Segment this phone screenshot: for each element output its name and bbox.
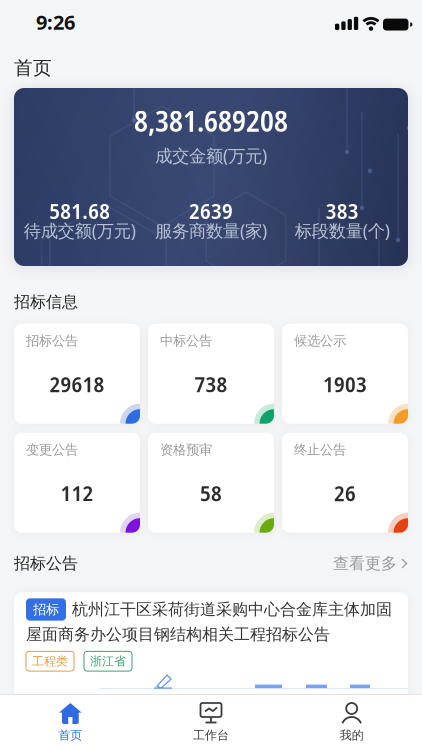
staticText: 标段数量(个) — [295, 219, 390, 242]
staticText: 杭州江干区采荷街道采购中心合金库主体加固 — [72, 600, 392, 619]
button[interactable]: 招标公告 — [14, 324, 140, 424]
staticText: 9:26 — [36, 9, 75, 35]
staticText: 查看更多 — [333, 554, 397, 573]
button[interactable]: 首页 — [0, 702, 141, 743]
staticText: 变更公告 — [26, 442, 78, 458]
button[interactable]: 变更公告 — [14, 433, 140, 533]
staticText: 首页 — [58, 728, 82, 743]
staticText: 服务商数量(家) — [155, 219, 267, 242]
staticText: 我的 — [340, 728, 364, 743]
staticText: 2639 — [189, 195, 233, 225]
button[interactable]: 工作台 — [141, 702, 281, 743]
staticText: 招标公告 — [26, 333, 78, 349]
staticText: 资格预审 — [160, 442, 212, 458]
staticText: 738 — [194, 369, 227, 399]
staticText: 112 — [60, 478, 93, 508]
staticText: 工程类 — [32, 654, 68, 668]
staticText: 招标 — [33, 601, 59, 618]
button[interactable]: 终止公告 — [282, 433, 408, 533]
staticText: 1903 — [323, 369, 367, 399]
button[interactable]: 招标 — [14, 592, 408, 704]
button[interactable]: 我的 — [281, 702, 422, 743]
staticText: 成交金额(万元) — [155, 144, 267, 167]
staticText: 浙江省 — [90, 654, 126, 668]
staticText: 29618 — [49, 369, 104, 399]
staticText: 383 — [326, 195, 359, 225]
button[interactable]: 资格预审 — [148, 433, 274, 533]
staticText: 8,381.689208 — [134, 101, 288, 140]
staticText: 招标公告 — [14, 554, 78, 573]
staticText: 候选公示 — [294, 333, 346, 349]
staticText: 屋面商务办公项目钢结构相关工程招标公告 — [26, 625, 330, 644]
staticText: 招标信息 — [14, 292, 78, 312]
staticText: 58 — [200, 478, 222, 508]
staticText: 中标公告 — [160, 333, 212, 349]
button[interactable]: 候选公示 — [282, 324, 408, 424]
staticText: 待成交额(万元) — [24, 219, 136, 242]
button[interactable]: 查看更多 — [333, 554, 408, 573]
button[interactable]: 中标公告 — [148, 324, 274, 424]
staticText: 26 — [334, 478, 356, 508]
staticText: 工作台 — [193, 728, 229, 743]
staticText: 终止公告 — [294, 442, 346, 458]
staticText: 581.68 — [49, 195, 110, 225]
staticText: 首页 — [14, 56, 52, 79]
